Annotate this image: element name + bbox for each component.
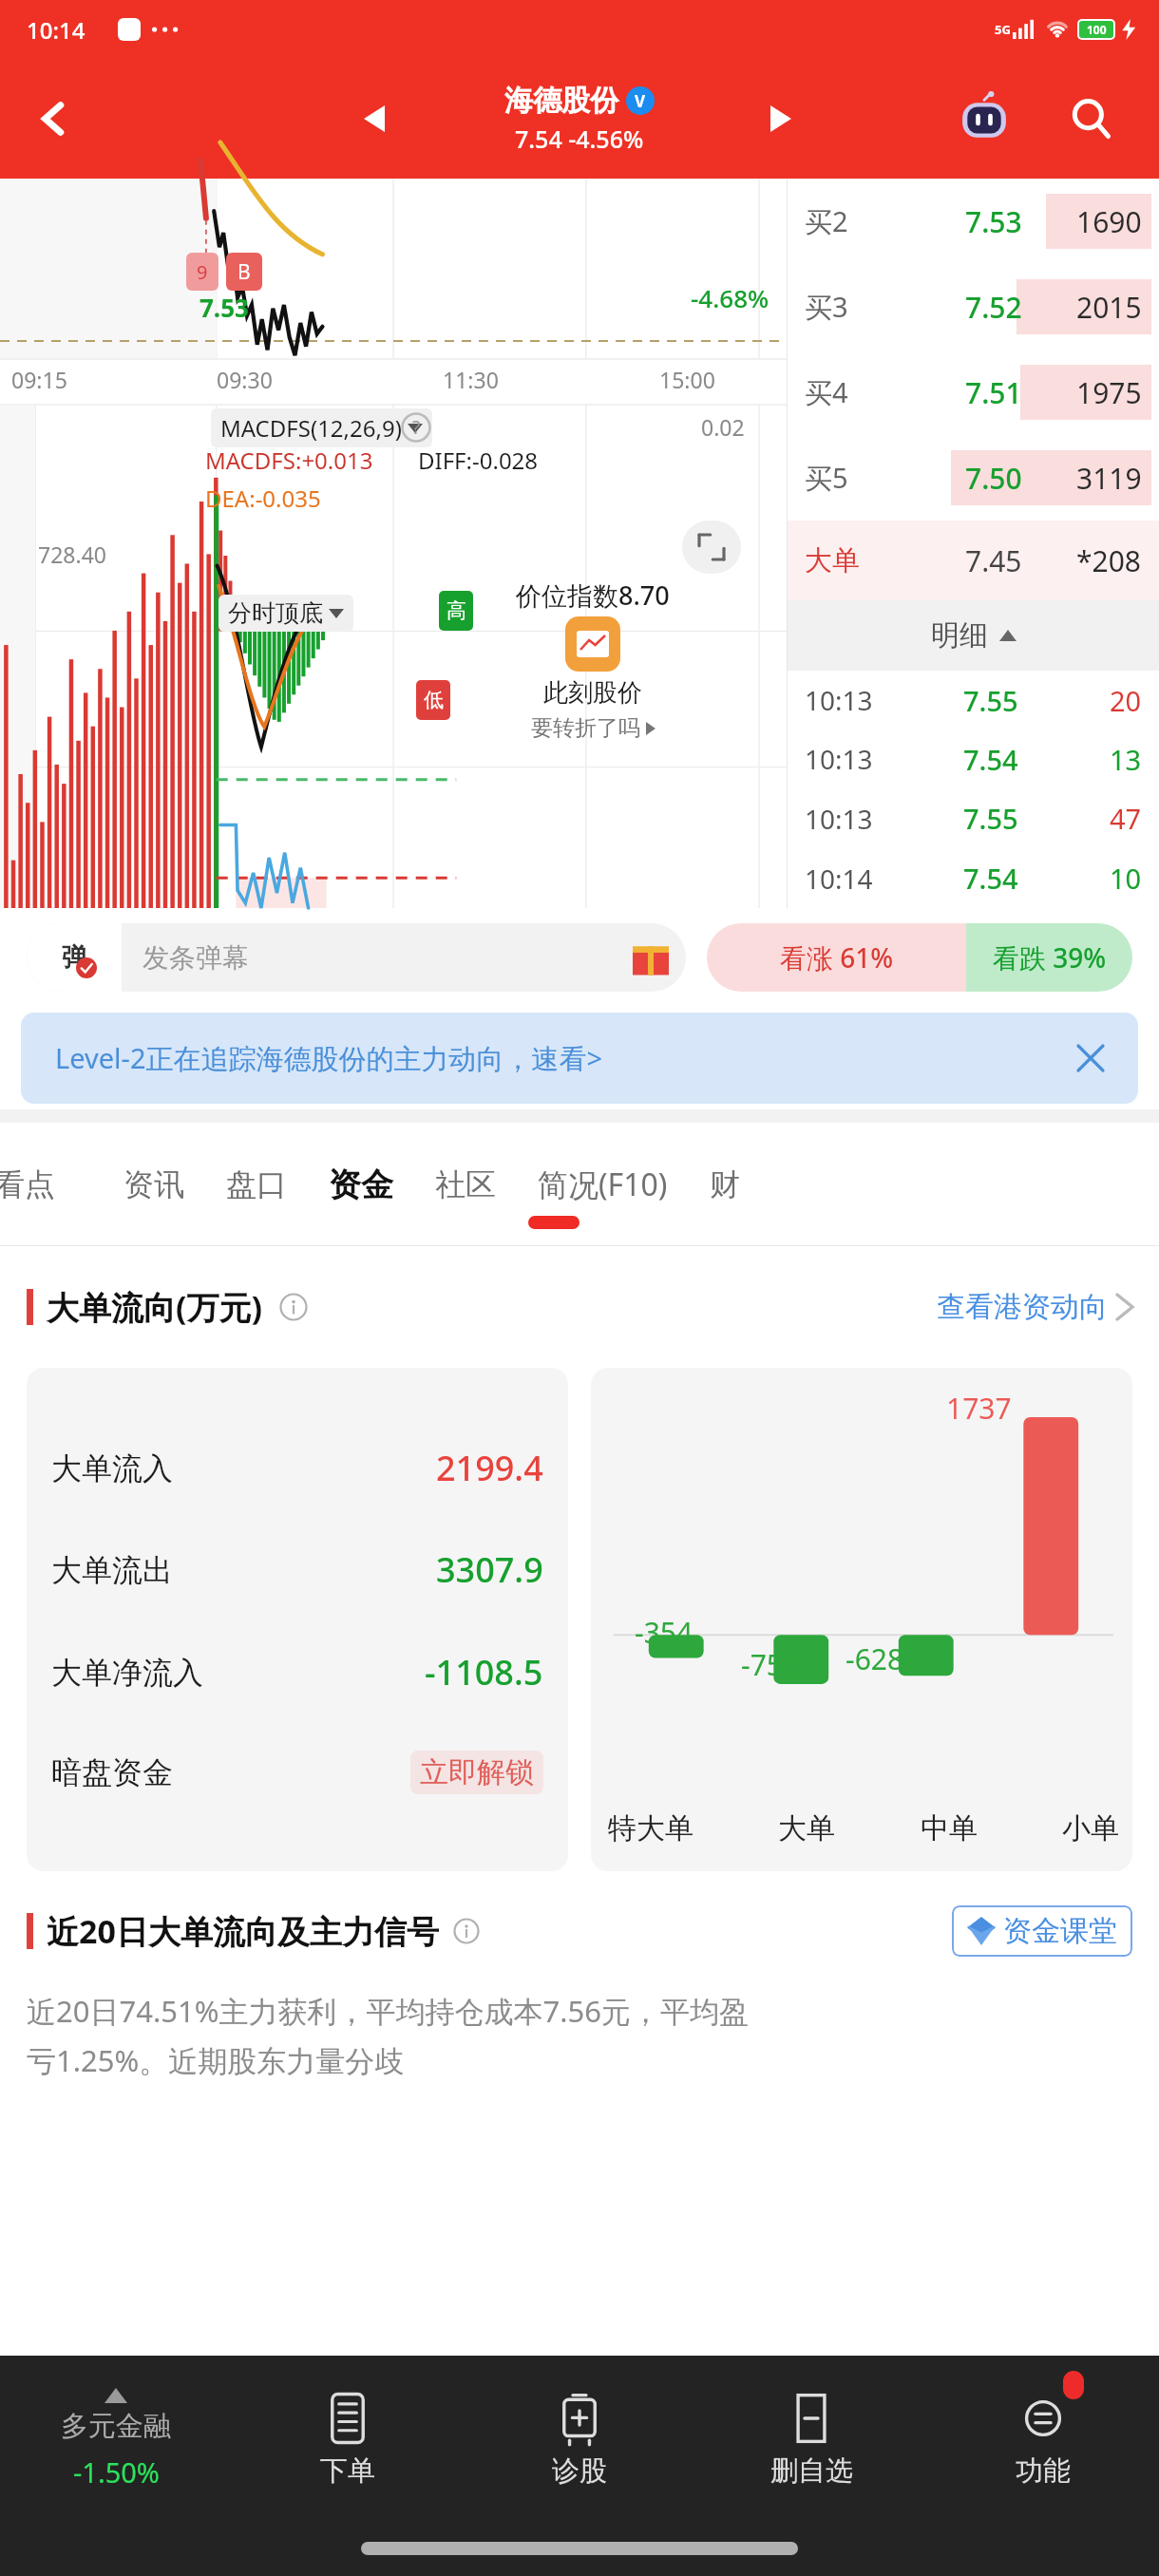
staticText: 价位指数8.70 [516, 578, 670, 613]
staticText: 2015 [1076, 288, 1142, 327]
button[interactable]: 搜索 [1056, 85, 1125, 153]
button[interactable]: 说明 [452, 1917, 481, 1945]
button[interactable]: 盘口 [226, 1123, 287, 1246]
button[interactable]: 下一只 [752, 90, 809, 147]
button[interactable]: 关闭 [1066, 1033, 1115, 1083]
staticText: 近20日大单流向及主力信号 [47, 1909, 439, 1953]
button[interactable]: 下单 [232, 2356, 464, 2523]
button[interactable]: 买5 [788, 435, 1159, 521]
button[interactable]: 弹 [27, 923, 686, 992]
staticText: 暗盘资金 [51, 1753, 173, 1791]
staticText: 大单 [778, 1810, 835, 1847]
staticText: -1.50% [73, 2453, 160, 2491]
staticText: 10:13 [805, 741, 873, 777]
staticText: -354 [635, 1613, 693, 1652]
staticText: 大单 [805, 543, 860, 578]
button[interactable]: 资金课堂 [967, 1913, 1117, 1949]
button[interactable]: 大单 [788, 521, 1159, 600]
staticText: 7.55 [963, 800, 1018, 837]
staticText: 7.55 [963, 682, 1018, 719]
button[interactable]: 资讯 [123, 1123, 184, 1246]
button[interactable]: 明细 [788, 600, 1159, 671]
staticText: 看点 [0, 1165, 55, 1203]
staticText: DIFF:-0.028 [418, 445, 539, 476]
staticText: -1108.5 [425, 1649, 543, 1695]
button[interactable]: 大单流入 [51, 1389, 543, 1850]
button[interactable]: 社区 [435, 1123, 496, 1246]
staticText: 15:00 [659, 365, 715, 394]
staticText: 5G [995, 21, 1011, 38]
staticText: 10:14 [27, 14, 85, 46]
button[interactable]: 海德股份 [504, 83, 655, 155]
staticText: 7.54 [963, 860, 1018, 897]
button[interactable]: 说明 [278, 1292, 309, 1322]
staticText: ? [412, 415, 421, 440]
staticText: 3307.9 [436, 1546, 543, 1593]
staticText: 728.40 [38, 540, 106, 569]
staticText: 7.53 [199, 291, 249, 324]
staticText: -4.68% [691, 281, 769, 314]
staticText: 近20日74.51%主力获利，平均持仓成本7.56元，平均盈 [27, 1991, 749, 2031]
staticText: 要转折了吗 [531, 714, 640, 742]
button[interactable]: 简况(F10) [538, 1123, 668, 1246]
staticText: 10 [1110, 860, 1142, 897]
staticText: 10:13 [805, 682, 873, 718]
staticText: 买4 [805, 373, 848, 411]
staticText: 13 [1110, 741, 1142, 778]
button[interactable]: MACDFS(12,26,9) [220, 412, 423, 444]
button[interactable]: 多元金融 [0, 2356, 232, 2523]
staticText: 特大单 [608, 1810, 693, 1847]
button[interactable]: 指标说明 [399, 410, 433, 445]
staticText: 大单流出 [51, 1551, 173, 1589]
staticText: 明细 [931, 617, 988, 653]
staticText: 47 [1110, 800, 1142, 837]
staticText: 盘口 [226, 1165, 287, 1203]
button[interactable]: 价位指数8.70 [450, 578, 735, 742]
staticText: 亏1.25%。近期股东力量分歧 [27, 2040, 405, 2080]
staticText: 1737 [946, 1389, 1012, 1428]
staticText: 7.51 [965, 373, 1022, 412]
button[interactable]: 1737 [591, 1368, 1132, 1871]
button[interactable]: 查看港资动向 [937, 1289, 1132, 1325]
staticText: 2199.4 [436, 1445, 543, 1491]
button[interactable]: 立即解锁 [420, 1754, 534, 1790]
staticText: 3119 [1076, 459, 1142, 498]
button[interactable]: 看点 [0, 1123, 55, 1246]
staticText: 资讯 [123, 1165, 184, 1203]
staticText: 简况(F10) [538, 1164, 668, 1205]
staticText: 资金 [329, 1165, 393, 1205]
button[interactable]: 财 [710, 1123, 740, 1246]
button[interactable]: 买2 [788, 179, 1159, 264]
staticText: 小单 [1062, 1810, 1119, 1847]
staticText: -753 [741, 1645, 800, 1684]
staticText: 11:30 [443, 365, 499, 394]
staticText: 大单净流入 [51, 1654, 203, 1692]
staticText: 7.54 -4.56% [515, 123, 644, 155]
staticText: 发条弹幕 [142, 941, 249, 975]
button[interactable]: 分时顶底 [228, 598, 344, 628]
button[interactable]: Level-2正在追踪海德股份的主力动向，速看> [21, 1013, 1138, 1104]
staticText: DEA:-0.035 [205, 483, 321, 514]
button[interactable]: 买4 [788, 350, 1159, 435]
button[interactable]: 删自选 [695, 2356, 927, 2523]
button[interactable]: 返回 [17, 82, 91, 156]
staticText: 资金课堂 [1003, 1913, 1117, 1949]
button[interactable]: 看涨 61% [707, 923, 1132, 992]
staticText: 弹 [62, 941, 87, 974]
button[interactable]: 功能 [927, 2356, 1159, 2523]
staticText: 下单 [320, 2453, 375, 2489]
staticText: 9 [197, 259, 208, 285]
staticText: 此刻股价 [543, 677, 642, 709]
button[interactable]: 10:13 [805, 671, 1142, 729]
button[interactable]: 诊股 [464, 2356, 695, 2523]
button[interactable]: 上一只 [346, 90, 403, 147]
button[interactable]: 10:14 [805, 848, 1142, 908]
button[interactable]: 买3 [788, 264, 1159, 350]
staticText: 社区 [435, 1165, 496, 1203]
button[interactable]: 10:13 [805, 729, 1142, 788]
button[interactable]: 资金 [329, 1123, 393, 1246]
staticText: 买2 [805, 202, 848, 240]
button[interactable]: 全屏 [682, 521, 741, 574]
button[interactable]: 智能助手 [950, 85, 1018, 153]
button[interactable]: 10:13 [805, 788, 1142, 848]
